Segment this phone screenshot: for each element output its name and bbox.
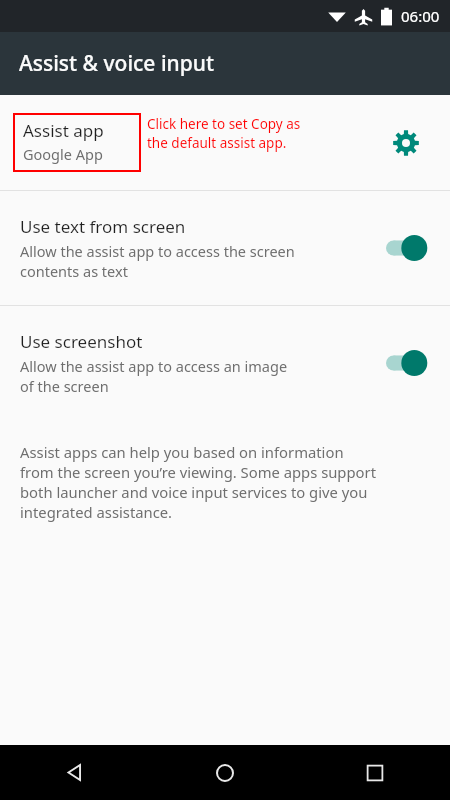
button[interactable]: Use text from screen xyxy=(0,191,450,305)
staticText: Assist & voice input xyxy=(19,49,214,78)
staticText: both launcher and voice input services t… xyxy=(20,482,368,502)
staticText: Click here to set Copy as xyxy=(147,115,301,133)
staticText: Assist app xyxy=(23,119,104,142)
staticText: Assist apps can help you based on inform… xyxy=(20,442,344,462)
staticText: Google App xyxy=(23,144,103,164)
button[interactable]: Use screenshot xyxy=(0,306,450,420)
staticText: Allow the assist app to access the scree… xyxy=(20,241,295,261)
staticText: 06:00 xyxy=(401,6,440,26)
staticText: the default assist app. xyxy=(147,134,287,152)
staticText: Allow the assist app to access an image xyxy=(20,356,288,376)
button[interactable]: Use screenshot toggle, on xyxy=(382,343,436,383)
button[interactable]: Recent apps xyxy=(300,745,450,800)
button[interactable]: Home xyxy=(150,745,300,800)
staticText: contents as text xyxy=(20,261,128,281)
button[interactable]: Assist app settings xyxy=(384,121,428,165)
staticText: integrated assistance. xyxy=(20,502,173,522)
button[interactable]: Assist app xyxy=(0,95,450,190)
staticText: Use text from screen xyxy=(20,215,186,238)
staticText: Use screenshot xyxy=(20,330,143,353)
staticText: of the screen xyxy=(20,376,109,396)
staticText: from the screen you’re viewing. Some app… xyxy=(20,462,376,482)
button[interactable]: Back xyxy=(0,745,150,800)
button[interactable]: Use text from screen toggle, on xyxy=(382,228,436,268)
